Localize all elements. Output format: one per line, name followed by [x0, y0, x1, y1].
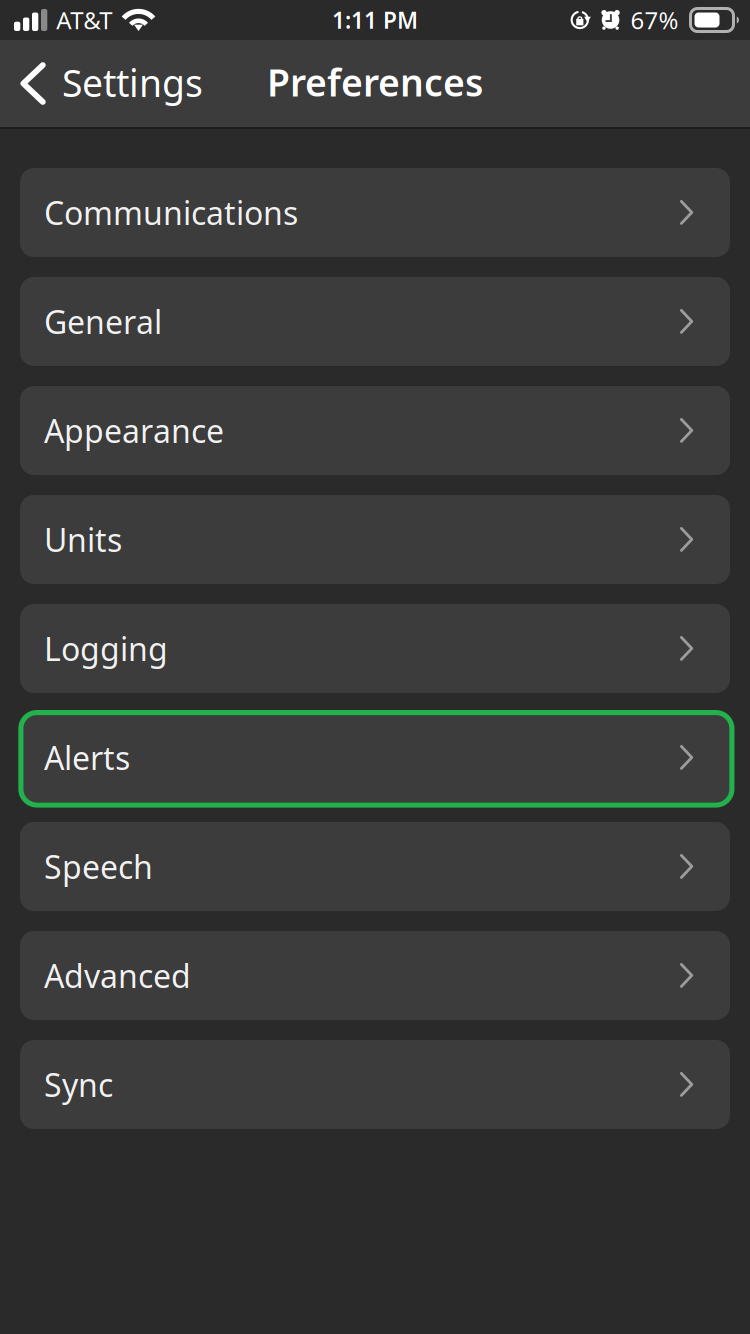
- button[interactable]: Communications: [20, 168, 730, 257]
- staticText: General: [44, 300, 162, 343]
- staticText: Advanced: [44, 954, 191, 997]
- staticText: Communications: [44, 191, 298, 234]
- button[interactable]: Advanced: [20, 931, 730, 1020]
- staticText: Sync: [44, 1063, 113, 1106]
- staticText: Alerts: [44, 736, 130, 779]
- staticText: Units: [44, 518, 122, 561]
- staticText: Preferences: [267, 57, 483, 107]
- button[interactable]: Units: [20, 495, 730, 584]
- staticText: Settings: [62, 58, 203, 107]
- button[interactable]: Alerts: [20, 713, 730, 802]
- staticText: Speech: [44, 845, 153, 888]
- button[interactable]: General: [20, 277, 730, 366]
- button[interactable]: Logging: [20, 604, 730, 693]
- staticText: 67%: [630, 4, 678, 36]
- staticText: 1:11 PM: [332, 5, 418, 35]
- button[interactable]: Appearance: [20, 386, 730, 475]
- button[interactable]: Speech: [20, 822, 730, 911]
- staticText: AT&T: [56, 4, 112, 36]
- button[interactable]: Sync: [20, 1040, 730, 1129]
- staticText: Appearance: [44, 409, 224, 452]
- button[interactable]: Settings: [0, 40, 217, 127]
- staticText: Logging: [44, 627, 168, 670]
